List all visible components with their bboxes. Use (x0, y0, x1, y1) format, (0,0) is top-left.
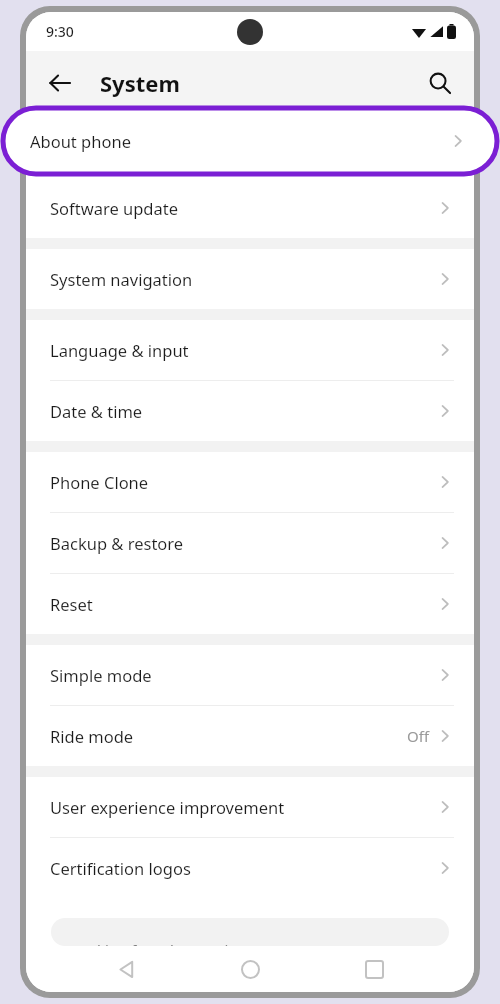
staticText: User experience improvement (50, 796, 436, 818)
staticText: Date & time (50, 400, 436, 422)
button[interactable]: Back (102, 946, 150, 992)
button[interactable]: Reset (26, 574, 474, 634)
button[interactable]: Search (416, 59, 464, 107)
staticText: System navigation (50, 268, 436, 290)
button[interactable]: Recents (350, 946, 398, 992)
staticText: Phone Clone (50, 471, 436, 493)
staticText: Certification logos (50, 857, 436, 879)
staticText: Looking for other settings? (71, 940, 261, 946)
button[interactable]: Phone Clone (26, 452, 474, 512)
staticText: Backup & restore (50, 532, 436, 554)
staticText: Language & input (50, 339, 436, 361)
button[interactable]: System navigation (26, 249, 474, 309)
button[interactable]: Home (226, 946, 274, 992)
button[interactable]: Looking for other settings? (51, 918, 449, 946)
staticText: 9:30 (46, 22, 74, 41)
button[interactable]: Back (36, 59, 84, 107)
staticText: Off (407, 726, 430, 746)
button[interactable]: Ride mode (26, 706, 474, 766)
button[interactable]: Date & time (26, 381, 474, 441)
staticText: Simple mode (50, 664, 436, 686)
staticText: About phone (30, 130, 449, 152)
button[interactable]: About phone (26, 114, 474, 178)
staticText: Software update (50, 197, 436, 219)
button[interactable]: Software update (26, 178, 474, 238)
staticText: Reset (50, 593, 436, 615)
button[interactable]: Backup & restore (26, 513, 474, 573)
button[interactable]: User experience improvement (26, 777, 474, 837)
staticText: Ride mode (50, 725, 407, 747)
button[interactable]: Simple mode (26, 645, 474, 705)
button[interactable]: Certification logos (26, 838, 474, 898)
staticText: System (100, 68, 180, 98)
button[interactable]: About phone (3, 108, 497, 174)
button[interactable]: Language & input (26, 320, 474, 380)
staticText: About phone (50, 135, 436, 157)
